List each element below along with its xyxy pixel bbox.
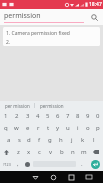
- staticText: 4: [36, 112, 40, 120]
- staticText: h: [59, 136, 63, 144]
- button[interactable]: Switch keyboard: [80, 171, 98, 183]
- button[interactable]: per mission: [0, 101, 34, 110]
- button[interactable]: Language: [22, 158, 32, 170]
- staticText: b: [60, 148, 64, 156]
- button[interactable]: h: [55, 134, 66, 146]
- button[interactable]: 5: [43, 110, 53, 122]
- staticText: 0: [96, 112, 100, 120]
- staticText: y: [56, 124, 60, 132]
- button[interactable]: x: [23, 146, 34, 158]
- button[interactable]: permission: [35, 101, 69, 110]
- staticText: 7: [66, 112, 70, 120]
- staticText: x: [27, 148, 31, 156]
- button[interactable]: ?123: [0, 158, 13, 170]
- staticText: 18:47: [89, 1, 102, 8]
- staticText: l: [93, 136, 95, 144]
- staticText: t: [47, 124, 50, 132]
- button[interactable]: c: [34, 146, 45, 158]
- staticText: s: [18, 136, 21, 144]
- button[interactable]: 8: [73, 110, 83, 122]
- staticText: p: [96, 124, 100, 132]
- staticText: i: [77, 124, 79, 132]
- staticText: o: [86, 124, 90, 132]
- button[interactable]: k: [77, 134, 88, 146]
- staticText: a: [7, 136, 11, 144]
- button[interactable]: 0: [93, 110, 103, 122]
- staticText: 1: [4, 112, 8, 120]
- button[interactable]: 9: [83, 110, 93, 122]
- staticText: ?123: [3, 162, 11, 167]
- staticText: 6: [56, 112, 60, 120]
- button[interactable]: q: [0, 122, 11, 134]
- button[interactable]: Period: [77, 158, 87, 170]
- button[interactable]: Shift: [0, 146, 13, 158]
- button[interactable]: Home: [44, 171, 62, 183]
- staticText: w: [14, 124, 19, 132]
- staticText: g: [48, 136, 52, 144]
- staticText: c: [38, 148, 41, 156]
- staticText: z: [17, 148, 20, 156]
- button[interactable]: y: [53, 122, 63, 134]
- button[interactable]: Backspace: [89, 146, 103, 158]
- button[interactable]: j: [66, 134, 77, 146]
- staticText: 3: [26, 112, 30, 120]
- button[interactable]: Enter: [91, 160, 100, 169]
- button[interactable]: r: [33, 122, 43, 134]
- staticText: e: [26, 124, 30, 132]
- staticText: k: [81, 136, 85, 144]
- button[interactable]: 2: [11, 110, 22, 122]
- button[interactable]: Comma: [13, 158, 22, 170]
- button[interactable]: a: [4, 134, 14, 146]
- button[interactable]: 4: [33, 110, 43, 122]
- staticText: f: [38, 136, 41, 144]
- staticText: 1. Camera permission fixed: [6, 30, 70, 37]
- button[interactable]: f: [34, 134, 44, 146]
- button[interactable]: w: [11, 122, 22, 134]
- button[interactable]: u: [63, 122, 73, 134]
- button[interactable]: Recents: [62, 171, 80, 183]
- staticText: 5: [46, 112, 50, 120]
- staticText: u: [66, 124, 70, 132]
- button[interactable]: Search: [89, 12, 100, 23]
- button[interactable]: d: [24, 134, 34, 146]
- button[interactable]: l: [88, 134, 99, 146]
- staticText: m: [81, 148, 87, 156]
- button[interactable]: Back: [26, 171, 44, 183]
- button[interactable]: 1. Camera permission fixed: [3, 27, 100, 46]
- button[interactable]: s: [14, 134, 24, 146]
- button[interactable]: z: [13, 146, 23, 158]
- button[interactable]: b: [56, 146, 67, 158]
- button[interactable]: 6: [53, 110, 63, 122]
- staticText: 2.: [6, 39, 11, 46]
- button[interactable]: m: [78, 146, 89, 158]
- staticText: n: [71, 148, 75, 156]
- button[interactable]: e: [22, 122, 33, 134]
- button[interactable]: g: [44, 134, 55, 146]
- button[interactable]: v: [45, 146, 56, 158]
- staticText: v: [49, 148, 53, 156]
- staticText: .: [81, 160, 83, 168]
- button[interactable]: 3: [22, 110, 33, 122]
- staticText: q: [4, 124, 8, 132]
- staticText: j: [71, 136, 73, 144]
- button[interactable]: i: [73, 122, 83, 134]
- button[interactable]: 1: [0, 110, 11, 122]
- staticText: d: [27, 136, 31, 144]
- button[interactable]: o: [83, 122, 93, 134]
- staticText: 8: [76, 112, 80, 120]
- button[interactable]: n: [67, 146, 78, 158]
- staticText: per mission: [5, 103, 30, 109]
- staticText: 9: [86, 112, 90, 120]
- staticText: r: [37, 124, 40, 132]
- staticText: ,: [17, 160, 19, 168]
- staticText: 2: [15, 112, 19, 120]
- staticText: permission: [40, 103, 64, 109]
- button[interactable]: 7: [63, 110, 73, 122]
- staticText: permission: [4, 11, 41, 21]
- button[interactable]: t: [43, 122, 53, 134]
- button[interactable]: p: [93, 122, 103, 134]
